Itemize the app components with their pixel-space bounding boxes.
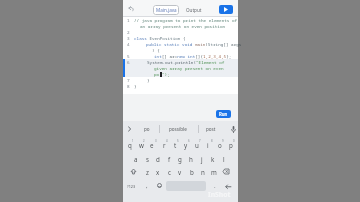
staticText: j <box>201 155 203 163</box>
staticText: z <box>146 168 149 176</box>
staticText: h <box>189 155 193 163</box>
staticText: s <box>146 155 149 163</box>
staticText: w <box>139 141 144 149</box>
staticText: 6 <box>127 59 130 65</box>
button[interactable]: x <box>153 166 163 177</box>
staticText: System.out.println("Element of <box>147 59 225 65</box>
staticText: g <box>178 155 182 163</box>
button[interactable]: g <box>175 153 185 164</box>
staticText: 8 <box>211 139 213 143</box>
staticText: ?123 <box>127 184 136 189</box>
staticText: 5 <box>127 53 130 59</box>
button[interactable]: Output <box>183 5 205 15</box>
button[interactable]: i <box>203 139 213 150</box>
staticText: 3 <box>155 139 157 143</box>
button[interactable] <box>128 127 131 131</box>
button[interactable]: post <box>200 123 222 135</box>
staticText: n <box>201 168 205 176</box>
button[interactable]: v <box>175 166 185 177</box>
button[interactable]: p <box>226 139 236 150</box>
button[interactable]: ?123 <box>124 181 138 191</box>
staticText: b <box>190 168 194 176</box>
button[interactable]: possible <box>164 123 192 135</box>
button[interactable] <box>219 5 233 14</box>
button[interactable]: h <box>186 153 196 164</box>
button[interactable] <box>231 126 236 133</box>
staticText: 5 <box>177 139 179 143</box>
staticText: po <box>144 126 150 132</box>
staticText: po <box>154 71 160 77</box>
staticText: a <box>134 155 138 163</box>
staticText: l <box>223 155 225 163</box>
staticText: 1 <box>132 139 134 143</box>
staticText: // java program to print the elements of <box>134 17 238 23</box>
button[interactable]: e <box>147 139 157 150</box>
staticText: Output <box>186 7 202 13</box>
button[interactable] <box>225 184 232 189</box>
staticText: o <box>218 141 222 149</box>
staticText: 1 <box>127 17 130 23</box>
staticText: 6 <box>188 139 190 143</box>
staticText: r <box>163 141 166 149</box>
button[interactable]: b <box>187 166 197 177</box>
staticText: 4 <box>127 41 130 47</box>
button[interactable]: m <box>209 166 219 177</box>
button[interactable]: j <box>197 153 207 164</box>
staticText: possible <box>169 126 187 132</box>
button[interactable] <box>128 6 134 12</box>
button[interactable]: r <box>159 139 169 150</box>
staticText: } <box>134 83 137 89</box>
staticText: } <box>147 77 150 83</box>
button[interactable]: u <box>192 139 202 150</box>
staticText: post <box>206 126 216 132</box>
staticText: an array present on even position <box>140 23 226 29</box>
button[interactable]: s <box>142 153 152 164</box>
button[interactable]: k <box>208 153 218 164</box>
staticText: 3 <box>127 35 130 41</box>
button[interactable]: d <box>153 153 163 164</box>
button[interactable]: po <box>137 123 157 135</box>
staticText: "); <box>162 71 170 77</box>
staticText: , <box>146 182 148 190</box>
staticText: c <box>168 168 171 176</box>
staticText: Run <box>219 111 228 117</box>
button[interactable]: t <box>170 139 180 150</box>
button[interactable]: a <box>131 153 141 164</box>
staticText: ) { <box>152 47 160 53</box>
button[interactable] <box>131 169 136 174</box>
staticText: d <box>156 155 160 163</box>
button[interactable]: o <box>215 139 225 150</box>
button[interactable]: . <box>211 181 219 191</box>
staticText: 2 <box>127 29 130 35</box>
staticText: k <box>211 155 215 163</box>
button[interactable]: l <box>219 153 229 164</box>
button[interactable]: y <box>181 139 191 150</box>
button[interactable]: Run <box>216 110 231 118</box>
staticText: 0 <box>233 139 235 143</box>
button[interactable]: , <box>143 181 151 191</box>
staticText: Main.java <box>156 7 177 13</box>
button[interactable]: c <box>164 166 174 177</box>
button[interactable]: q <box>125 139 135 150</box>
staticText: 2 <box>143 139 145 143</box>
button[interactable]: z <box>142 166 152 177</box>
staticText: v <box>178 168 182 176</box>
button[interactable] <box>223 169 229 174</box>
button[interactable]: Main.java <box>153 5 179 15</box>
staticText: class EvenPosition { <box>134 35 186 41</box>
button[interactable] <box>157 183 162 188</box>
staticText: InShot <box>208 190 231 199</box>
staticText: 7 <box>199 139 201 143</box>
staticText: given array present on even <box>154 65 224 71</box>
button[interactable]: n <box>198 166 208 177</box>
button[interactable]: w <box>136 139 146 150</box>
staticText: 7 <box>127 77 130 83</box>
staticText: p <box>229 141 233 149</box>
button[interactable]: f <box>164 153 174 164</box>
staticText: public static void main(String[] args <box>146 41 242 47</box>
staticText: i <box>207 141 209 149</box>
staticText: y <box>184 141 188 149</box>
staticText: f <box>168 155 171 163</box>
staticText: u <box>195 141 199 149</box>
